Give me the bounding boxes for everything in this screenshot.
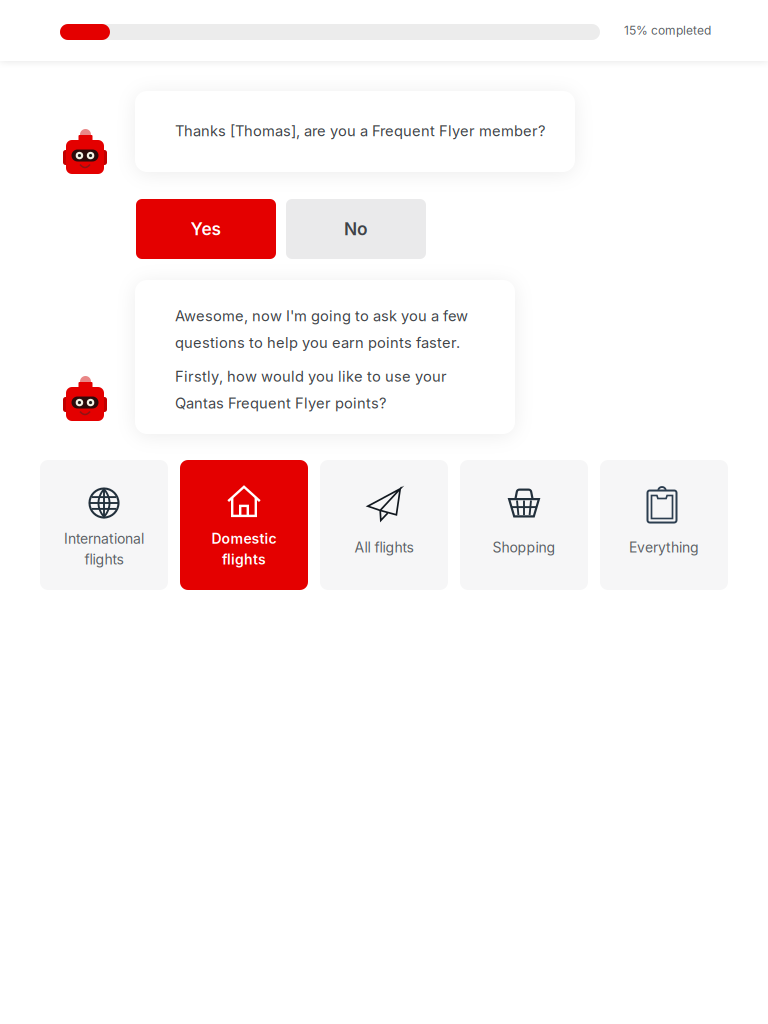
staticText: flights — [84, 551, 123, 568]
staticText: Shopping — [492, 539, 555, 556]
button[interactable]: Yes — [136, 199, 276, 259]
staticText: flights — [222, 551, 266, 568]
staticText: Everything — [629, 539, 699, 556]
button[interactable]: International — [40, 460, 168, 590]
button[interactable]: Domestic — [180, 460, 308, 590]
staticText: 15% completed — [624, 23, 711, 37]
staticText: No — [344, 218, 368, 239]
staticText: Domestic — [211, 530, 276, 547]
staticText: Thanks [Thomas], are you a Frequent Flye… — [175, 122, 545, 140]
staticText: All flights — [354, 539, 413, 556]
button[interactable]: Shopping — [460, 460, 588, 590]
staticText: Firstly, how would you like to use your … — [175, 367, 447, 412]
button[interactable]: No — [286, 199, 426, 259]
staticText: Awesome, now I'm going to ask you a few … — [175, 307, 468, 351]
button[interactable]: Everything — [600, 460, 728, 590]
button[interactable]: All flights — [320, 460, 448, 590]
staticText: Yes — [190, 218, 221, 239]
staticText: International — [64, 530, 144, 547]
